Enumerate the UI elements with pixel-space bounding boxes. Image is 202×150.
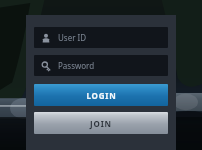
button[interactable]: JOIN: [34, 112, 168, 134]
button[interactable]: Password: [34, 55, 168, 76]
button[interactable]: LOGIN: [34, 84, 168, 106]
button[interactable]: User ID: [34, 27, 168, 48]
staticText: User ID: [58, 32, 87, 43]
staticText: Password: [58, 60, 95, 71]
staticText: LOGIN: [86, 90, 117, 101]
staticText: JOIN: [90, 118, 112, 129]
